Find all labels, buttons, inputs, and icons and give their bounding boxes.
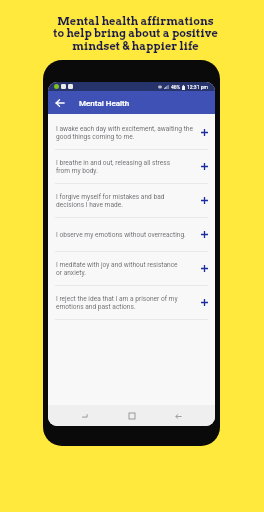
staticText: 12:31 pm (187, 84, 208, 90)
staticText: I breathe in and out, releasing all stre… (56, 159, 194, 174)
staticText: I observe my emotions without overreacti… (56, 231, 194, 239)
staticText: I reject the idea that I am a prisoner o… (56, 295, 194, 310)
button[interactable]: Recents (76, 407, 94, 425)
button[interactable]: I observe my emotions without overreacti… (48, 218, 215, 252)
button[interactable]: I meditate with joy and without resistan… (48, 252, 215, 286)
staticText: I meditate with joy and without resistan… (56, 261, 194, 276)
button[interactable]: I reject the idea that I am a prisoner o… (48, 286, 215, 320)
staticText: Mental health affirmations to help bring… (53, 14, 218, 53)
staticText: 46% (171, 84, 181, 90)
staticText: Mental Health (79, 99, 130, 108)
staticText: I awake each day with excitement, awaiti… (56, 125, 194, 140)
button[interactable]: I awake each day with excitement, awaiti… (48, 116, 215, 150)
button[interactable]: Back (169, 407, 187, 425)
button[interactable]: Home (123, 407, 141, 425)
button[interactable]: Back (51, 94, 69, 112)
staticText: I forgive myself for mistakes and bad de… (56, 193, 194, 208)
button[interactable]: I breathe in and out, releasing all stre… (48, 150, 215, 184)
button[interactable]: I forgive myself for mistakes and bad de… (48, 184, 215, 218)
